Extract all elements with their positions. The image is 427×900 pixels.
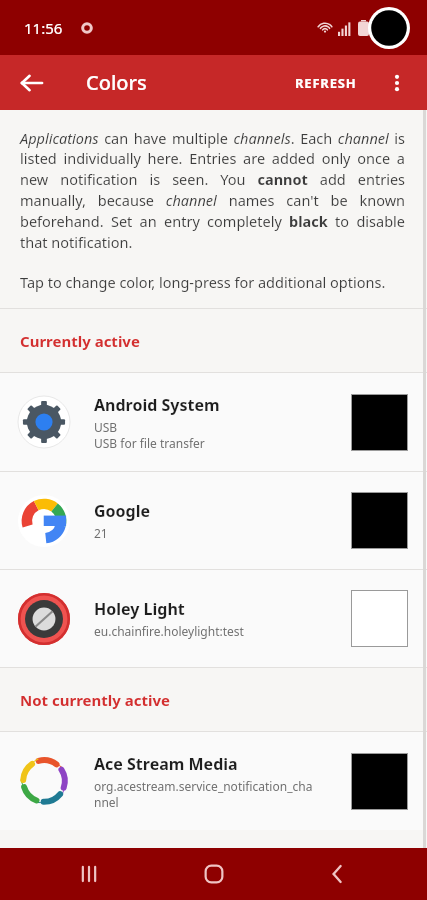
staticText: Currently active	[20, 331, 140, 351]
button[interactable]: Color swatch	[351, 590, 408, 647]
staticText: REFRESH	[295, 74, 357, 92]
button[interactable]: Home	[179, 848, 249, 900]
button[interactable]: More options	[373, 59, 421, 107]
button[interactable]: Color swatch	[351, 753, 408, 810]
staticText: Android System	[94, 394, 220, 416]
button[interactable]: Back	[8, 59, 56, 107]
staticText: Tap to change color, long-press for addi…	[20, 272, 386, 292]
button[interactable]: Holey Light	[0, 570, 427, 667]
staticText: eu.chainfire.holeylight:test	[94, 623, 244, 639]
staticText: USB for file transfer	[94, 435, 205, 451]
button[interactable]: Ace Stream Media	[0, 732, 427, 830]
button[interactable]: Color swatch	[351, 492, 408, 549]
staticText: Holey Light	[94, 598, 185, 620]
button[interactable]: Recent apps	[54, 848, 124, 900]
staticText: Applications can have multiple channels.…	[20, 128, 405, 253]
button[interactable]: REFRESH	[287, 66, 365, 100]
staticText: 21	[94, 525, 108, 541]
staticText: 11:56	[24, 18, 63, 38]
staticText: USB	[94, 419, 118, 435]
button[interactable]: Back	[303, 848, 373, 900]
staticText: Ace Stream Media	[94, 753, 238, 775]
button[interactable]: Android System	[0, 373, 427, 471]
staticText: org.acestream.service_notification_cha	[94, 778, 313, 794]
staticText: nnel	[94, 794, 119, 810]
staticText: Google	[94, 500, 151, 522]
button[interactable]: Google	[0, 472, 427, 569]
staticText: Colors	[86, 69, 147, 96]
button[interactable]: Color swatch	[351, 394, 408, 451]
staticText: Not currently active	[20, 690, 170, 710]
